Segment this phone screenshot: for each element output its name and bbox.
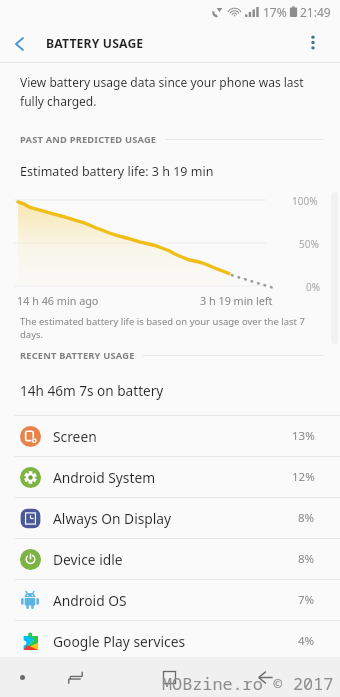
button[interactable]: Home <box>152 657 186 697</box>
staticText: 17% <box>263 4 287 20</box>
staticText: 100% <box>292 194 318 208</box>
button[interactable]: Google Play services <box>0 621 340 661</box>
button[interactable]: Back <box>248 657 282 697</box>
staticText: PAST AND PREDICTED USAGE <box>20 133 157 146</box>
button[interactable]: Device idle <box>0 539 340 579</box>
staticText: RECENT BATTERY USAGE <box>20 349 135 362</box>
staticText: Android System <box>53 468 156 487</box>
button[interactable]: Android OS <box>0 580 340 620</box>
staticText: 13% <box>292 428 315 444</box>
button[interactable]: More options <box>296 25 330 62</box>
staticText: 12% <box>292 469 315 485</box>
staticText: Device idle <box>53 550 123 569</box>
staticText: 14 h 46 min ago <box>17 293 99 308</box>
button[interactable]: Menu <box>9 657 35 697</box>
staticText: View battery usage data since your phone… <box>20 74 304 109</box>
staticText: The estimated battery life is based on y… <box>20 315 305 341</box>
staticText: MOBzine.ro © 2017 <box>162 672 334 695</box>
staticText: 4% <box>298 633 315 649</box>
button[interactable]: Always On Display <box>0 498 340 538</box>
button[interactable]: Screen <box>0 416 340 456</box>
staticText: 3 h 19 min left <box>200 293 273 308</box>
staticText: Estimated battery life: 3 h 19 min <box>20 163 214 180</box>
staticText: Screen <box>53 427 97 446</box>
staticText: 7% <box>298 592 315 608</box>
staticText: 14h 46m 7s on battery <box>20 381 164 400</box>
staticText: 8% <box>298 510 315 526</box>
button[interactable]: Android System <box>0 457 340 497</box>
staticText: 50% <box>299 237 319 251</box>
staticText: 21:49 <box>300 4 331 20</box>
staticText: 8% <box>298 551 315 567</box>
staticText: 0% <box>306 280 321 294</box>
staticText: Always On Display <box>53 509 172 528</box>
button[interactable]: Recents <box>56 657 94 697</box>
button[interactable]: Back <box>0 25 41 62</box>
staticText: Android OS <box>53 591 127 610</box>
staticText: Google Play services <box>53 632 186 651</box>
staticText: BATTERY USAGE <box>46 35 144 52</box>
